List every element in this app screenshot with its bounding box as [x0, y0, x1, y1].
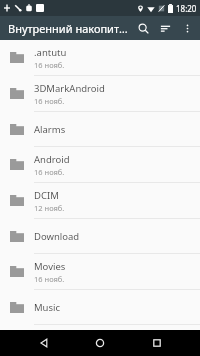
staticText: Movies: [34, 260, 66, 273]
button[interactable]: 3DMarkAndroid: [0, 76, 200, 111]
button[interactable]: Sort: [154, 17, 176, 39]
button[interactable]: DCIM: [0, 183, 200, 218]
staticText: Alarms: [34, 123, 66, 136]
staticText: 16 нояб.: [34, 60, 65, 70]
staticText: Android: [34, 153, 70, 166]
staticText: .antutu: [34, 46, 67, 59]
button[interactable]: More options: [176, 17, 198, 39]
button[interactable]: Alarms: [0, 112, 200, 146]
button[interactable]: Search: [132, 17, 154, 39]
button[interactable]: .antutu: [0, 40, 200, 75]
staticText: 18:20: [176, 3, 197, 14]
button[interactable]: Movies: [0, 254, 200, 289]
staticText: 16 нояб.: [34, 274, 65, 284]
staticText: 3DMarkAndroid: [34, 82, 105, 95]
staticText: Внутренний накопитель: [8, 21, 132, 36]
button[interactable]: Android: [0, 147, 200, 182]
button[interactable]: Download: [0, 219, 200, 253]
staticText: DCIM: [34, 189, 59, 202]
staticText: 16 нояб.: [34, 96, 65, 106]
staticText: 16 нояб.: [34, 167, 65, 177]
staticText: Download: [34, 230, 80, 243]
button[interactable]: Recent apps: [144, 330, 170, 356]
staticText: Music: [34, 301, 61, 314]
button[interactable]: Back: [31, 330, 57, 356]
button[interactable]: Home: [87, 330, 113, 356]
button[interactable]: Music: [0, 290, 200, 324]
staticText: 12 нояб.: [34, 203, 65, 213]
